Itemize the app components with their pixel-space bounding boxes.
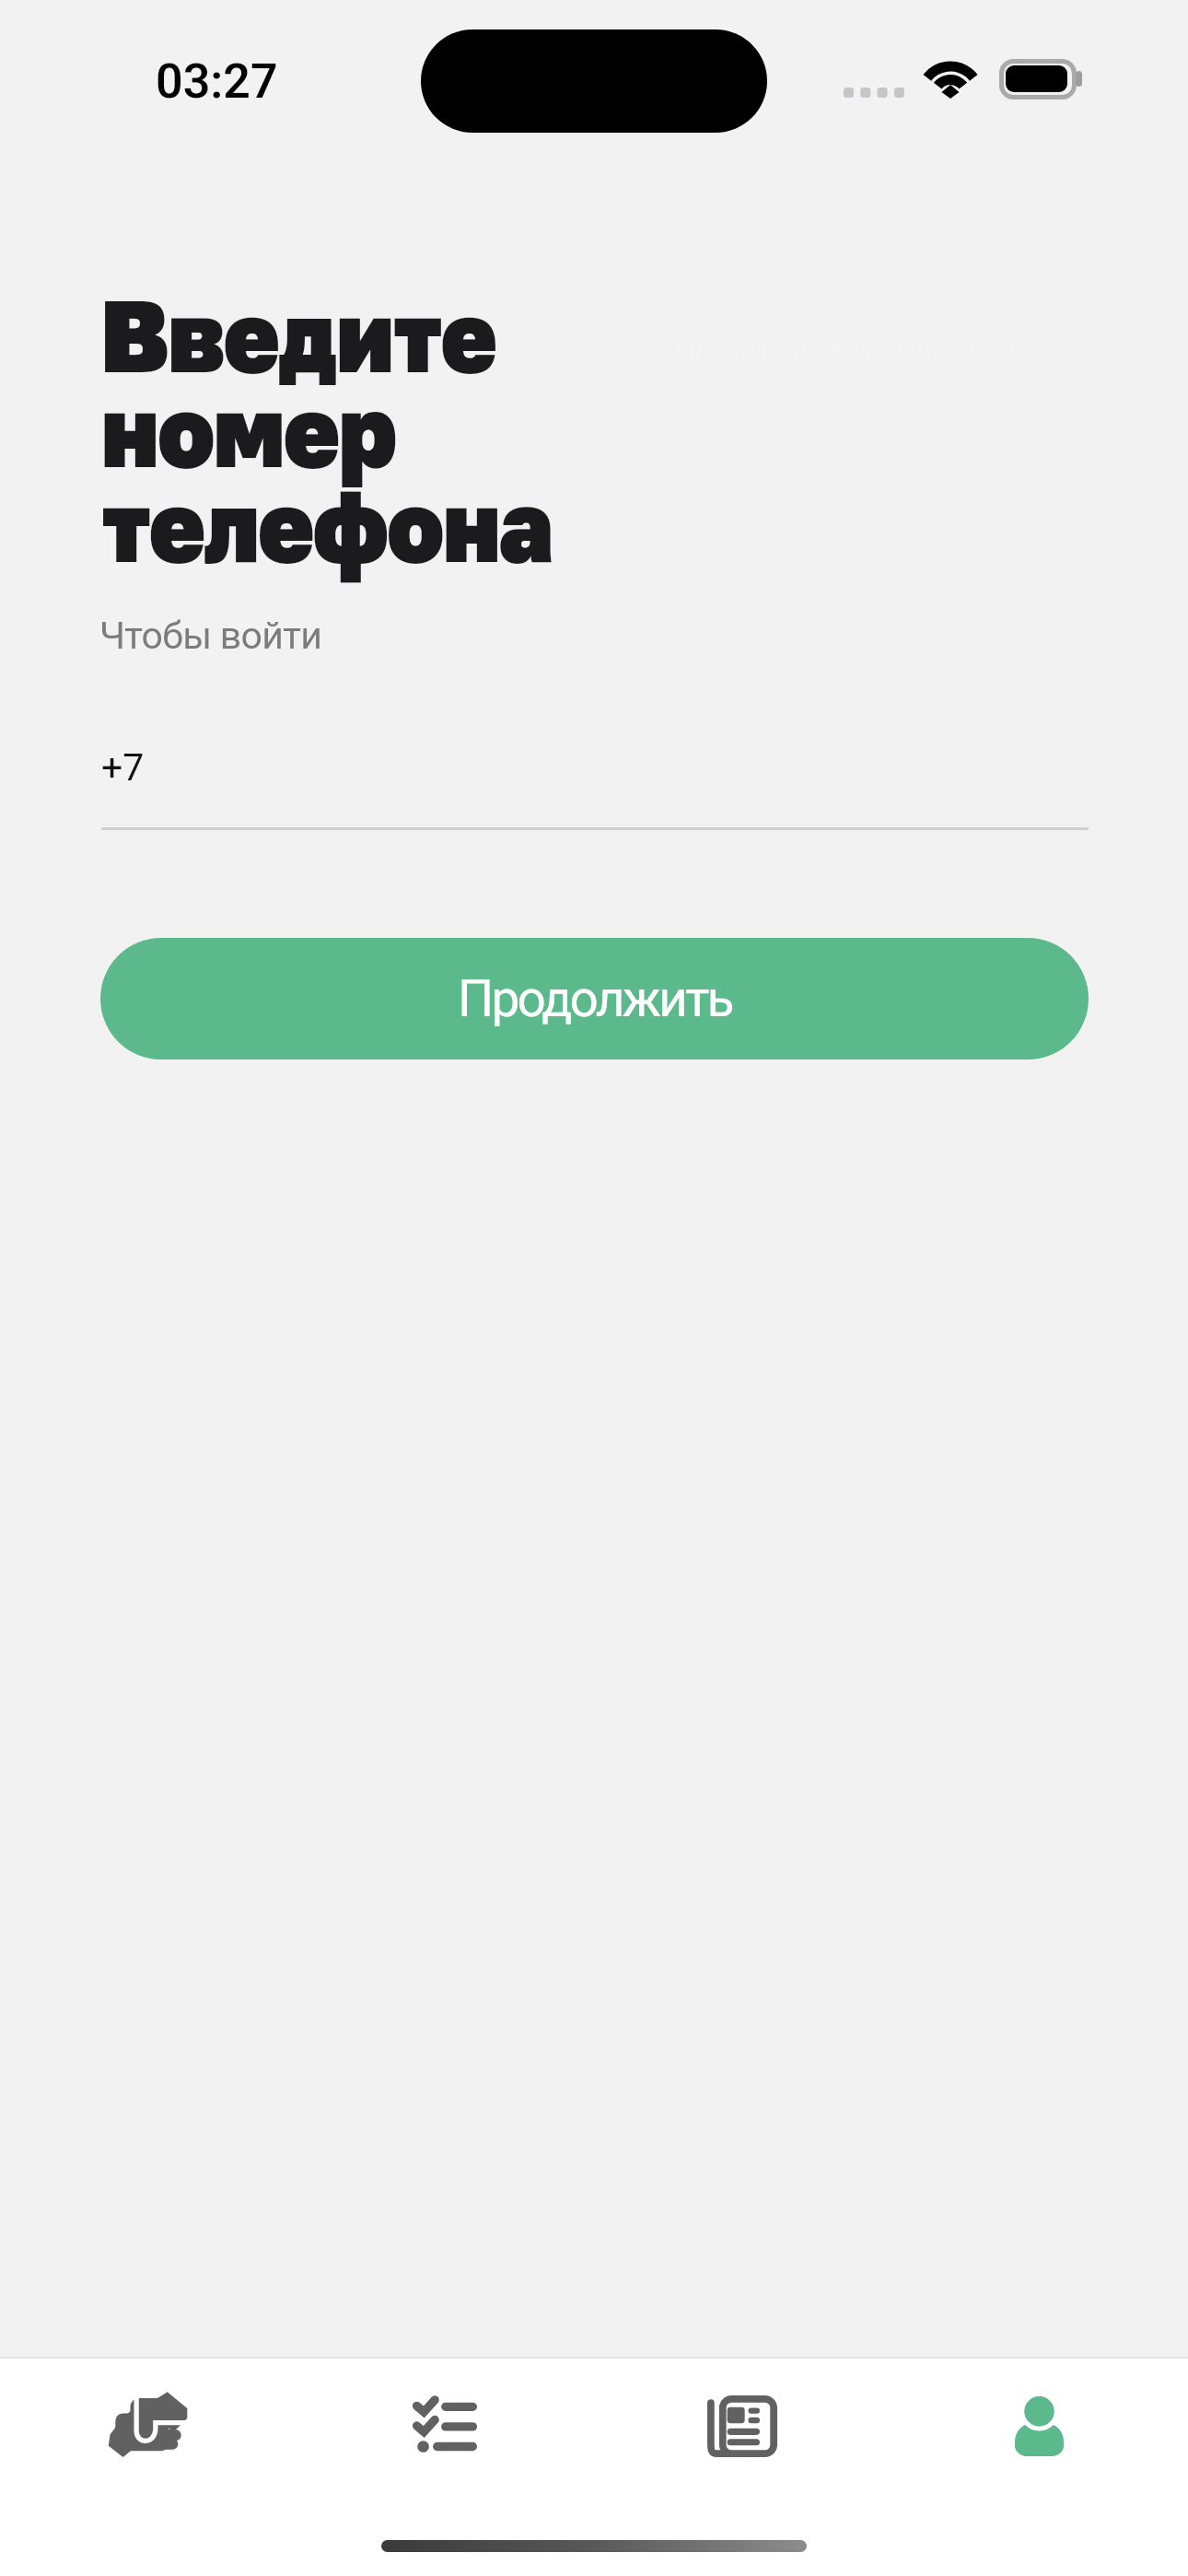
staticText: 03:27 — [156, 53, 278, 110]
staticText: Введите номер телефона — [101, 274, 553, 584]
button[interactable]: Tasks — [297, 2359, 593, 2495]
button[interactable]: Продолжить — [100, 938, 1089, 1060]
staticText: Продолжить — [458, 969, 732, 1028]
staticText: Чтобы войти — [99, 614, 322, 658]
button[interactable]: Deals — [0, 2359, 297, 2495]
button[interactable]: News — [593, 2359, 891, 2495]
staticText: +7 — [101, 745, 145, 790]
button[interactable]: Profile — [891, 2359, 1188, 2495]
